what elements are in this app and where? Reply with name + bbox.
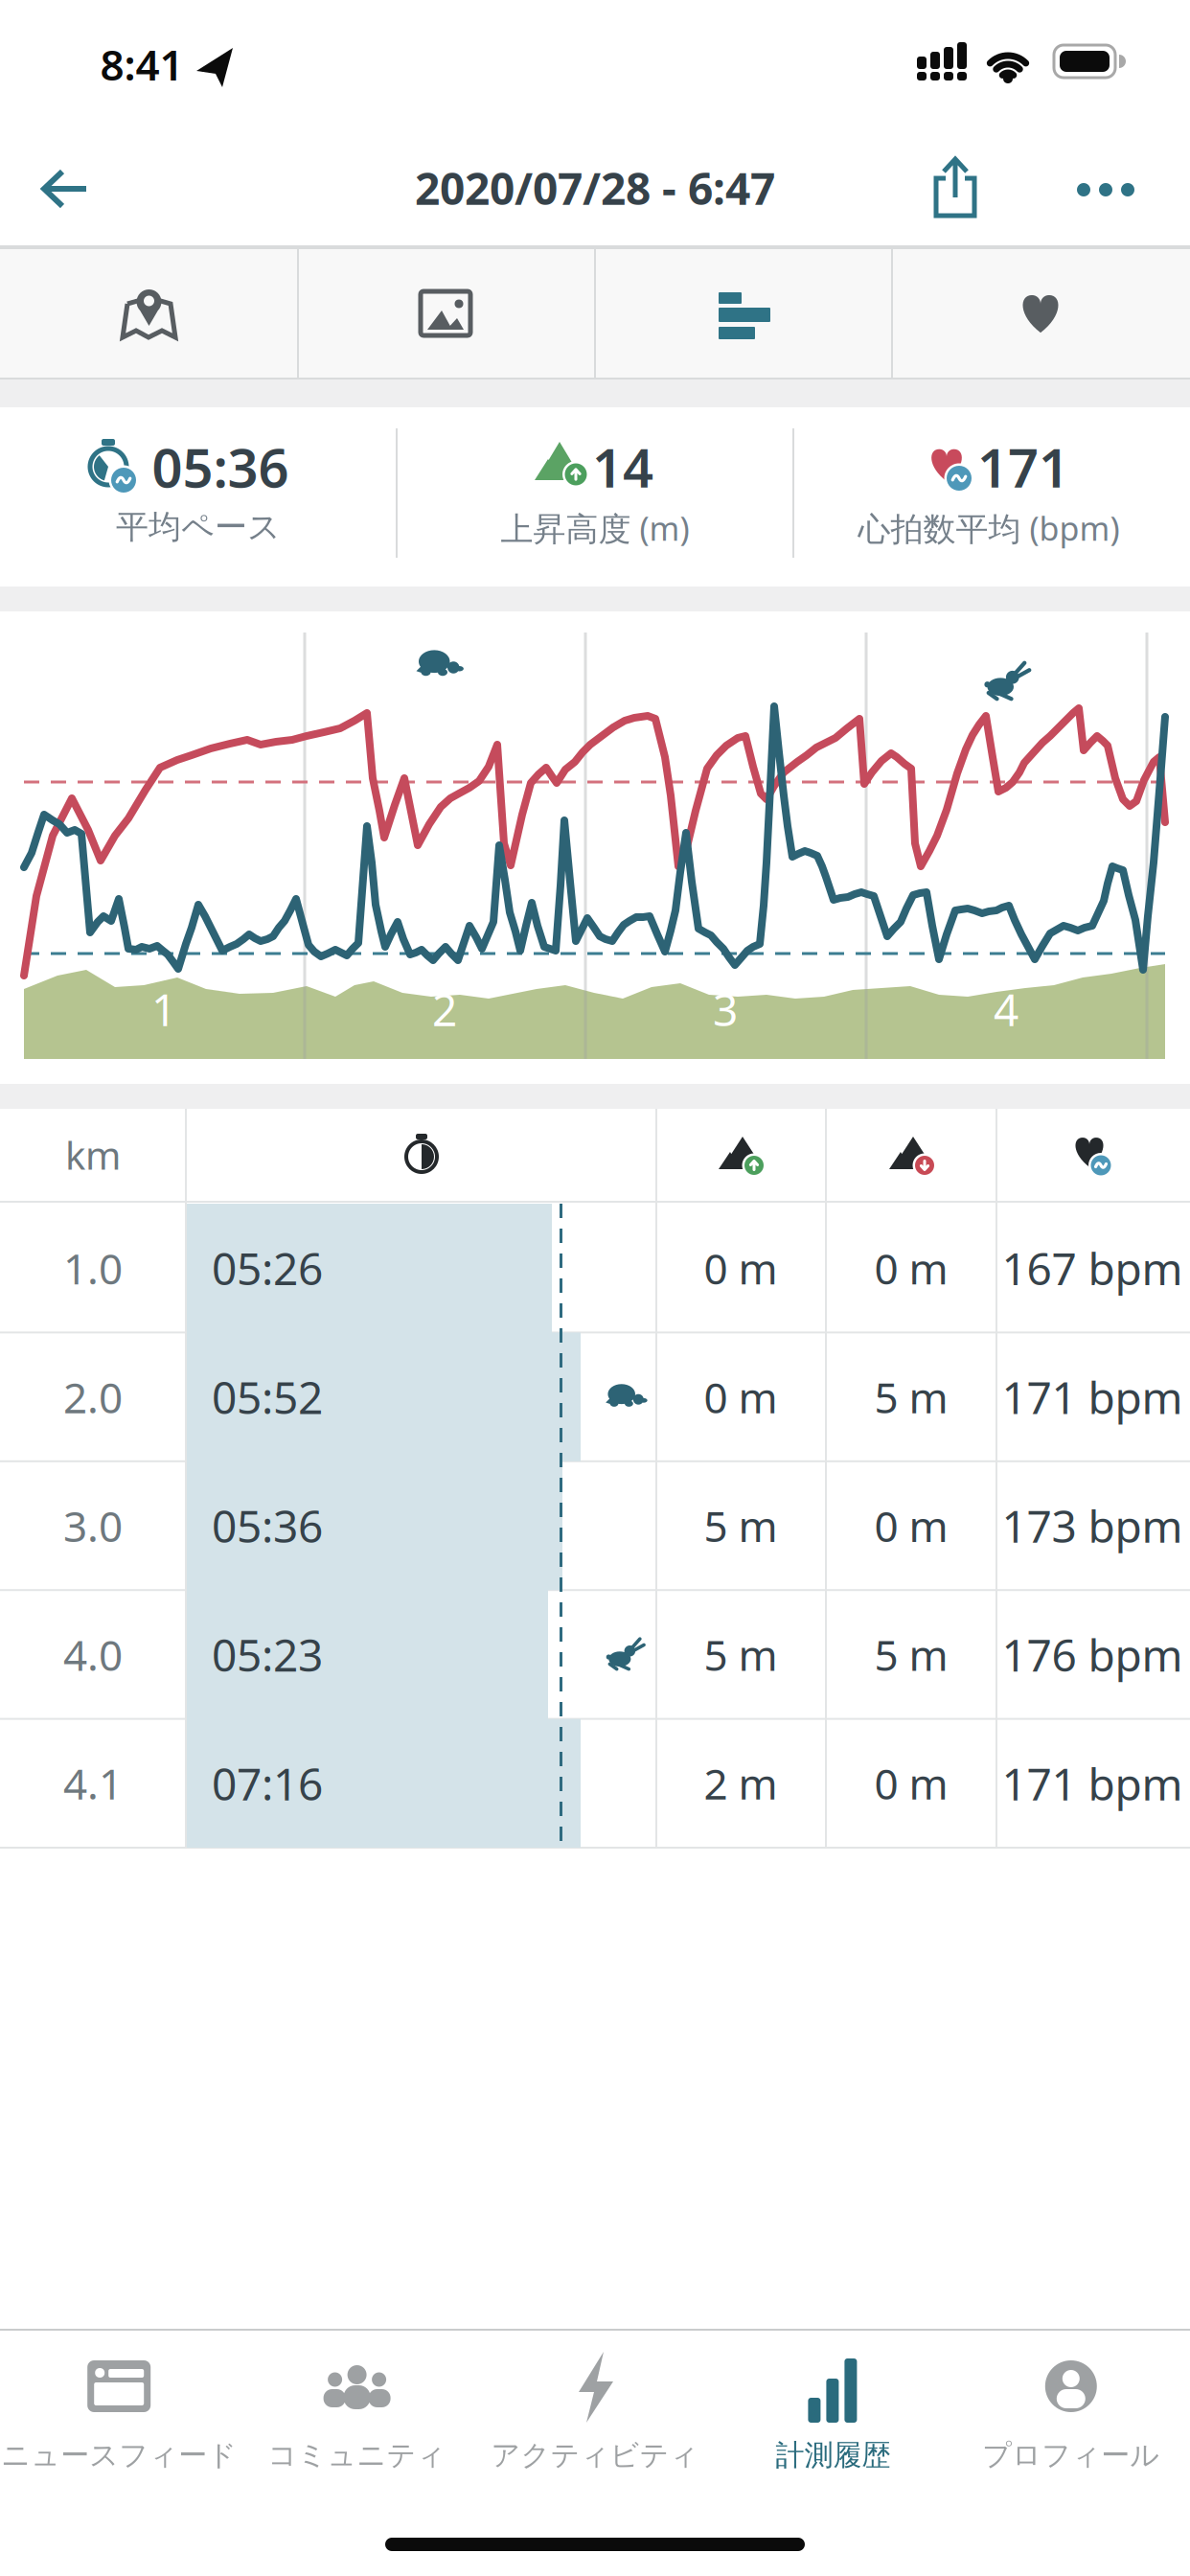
staticText: 3.0 [63,1498,123,1554]
staticText: 173 bpm [1002,1496,1183,1555]
staticText: 2 m [704,1755,778,1811]
staticText: ニュースフィード [1,2438,237,2473]
button[interactable]: Stats [596,249,891,378]
staticText: 05:26 [212,1239,323,1297]
staticText: 0 m [874,1498,948,1554]
staticText: 05:36 [212,1496,323,1555]
button[interactable]: Back [22,146,108,232]
button[interactable]: アクティビティ [476,2331,714,2494]
button[interactable]: Photos [298,249,593,378]
staticText: 4 [994,980,1018,1038]
staticText: 0 m [704,1240,778,1296]
staticText: 05:23 [212,1625,323,1684]
button[interactable]: コミュニティ [238,2331,476,2494]
button[interactable]: Share [917,146,994,232]
staticText: 0 m [874,1755,948,1811]
staticText: 4.1 [63,1755,123,1811]
staticText: 3 [713,980,738,1038]
button[interactable]: プロフィール [952,2331,1190,2494]
staticText: 8:41 [100,36,183,92]
staticText: 167 bpm [1002,1239,1183,1297]
staticText: 上昇高度 (m) [501,506,689,550]
staticText: 1 [151,980,176,1038]
staticText: km [65,1129,121,1180]
staticText: 05:52 [212,1368,323,1426]
staticText: 14 [592,431,653,502]
staticText: 0 m [874,1240,948,1296]
button[interactable]: Favorite [893,249,1188,378]
staticText: プロフィール [982,2438,1160,2473]
staticText: 5 m [874,1626,948,1682]
staticText: 171 bpm [1002,1368,1183,1426]
staticText: 2020/07/28 - 6:47 [415,159,775,217]
button[interactable]: ニュースフィード [0,2331,238,2494]
staticText: 171 bpm [1002,1754,1183,1813]
staticText: コミュニティ [268,2438,446,2473]
staticText: 05:36 [152,431,289,502]
button[interactable]: 計測履歴 [714,2331,952,2494]
staticText: 4.0 [63,1626,123,1682]
button[interactable]: Map [1,249,296,378]
staticText: 5 m [704,1626,778,1682]
staticText: 176 bpm [1002,1625,1183,1684]
staticText: 平均ペース [116,507,281,547]
staticText: 2 [432,980,457,1038]
staticText: 1.0 [63,1240,123,1296]
staticText: 計測履歴 [776,2438,890,2473]
staticText: アクティビティ [491,2438,699,2473]
staticText: 07:16 [212,1754,323,1813]
staticText: 2.0 [63,1369,123,1425]
staticText: 0 m [704,1369,778,1425]
staticText: 5 m [704,1498,778,1554]
staticText: 5 m [874,1369,948,1425]
staticText: 心拍数平均 (bpm) [858,506,1120,550]
button[interactable]: More [1063,161,1149,218]
staticText: 171 [977,431,1069,502]
